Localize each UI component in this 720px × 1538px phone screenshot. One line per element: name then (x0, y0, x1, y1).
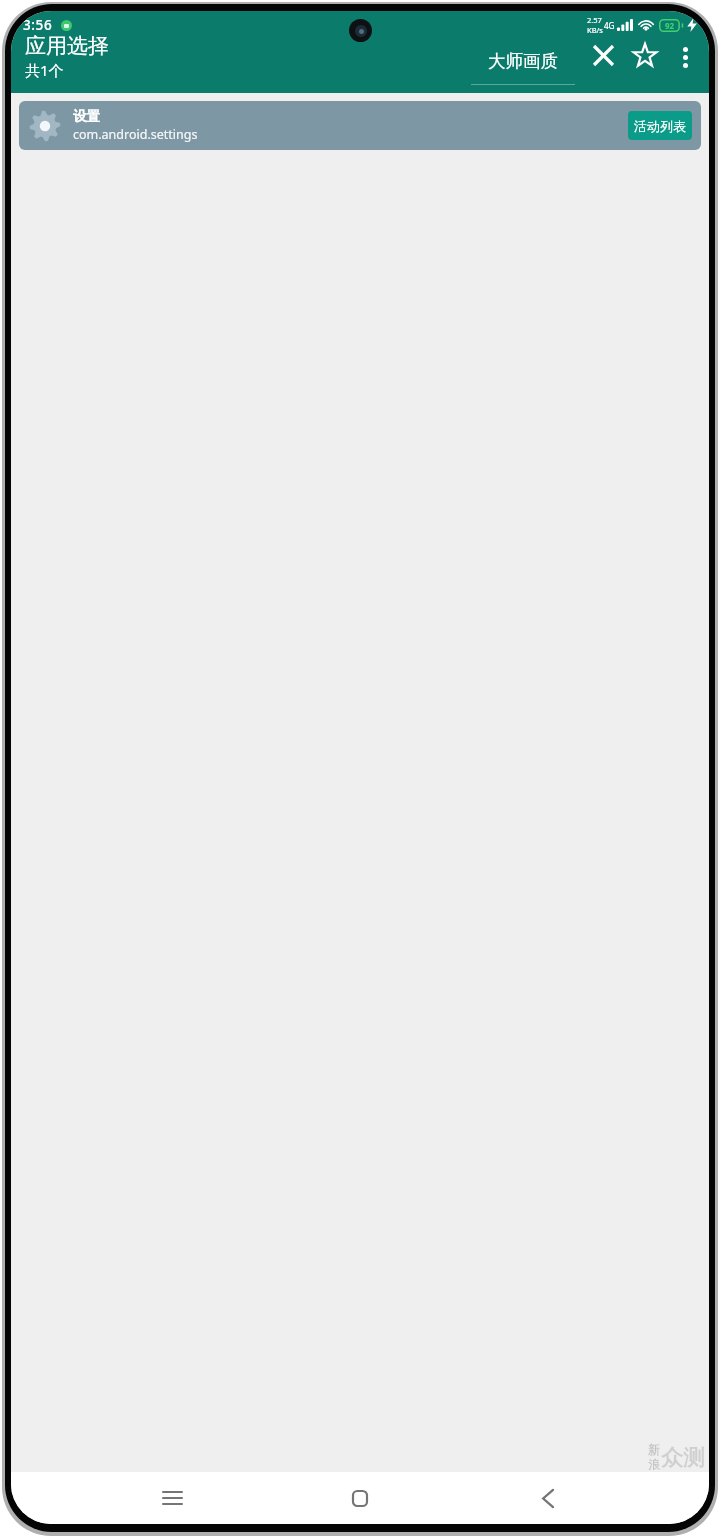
staticText: com.android.settings (73, 126, 198, 143)
button[interactable]: 更多选项 (666, 38, 704, 76)
staticText: 92 (665, 20, 675, 31)
staticText: 新 (648, 1442, 660, 1457)
button[interactable]: 收藏 (624, 34, 666, 76)
button[interactable]: 主屏幕 (333, 1472, 387, 1524)
staticText: 大师画质 (488, 50, 558, 72)
button[interactable]: 最近任务 (145, 1472, 199, 1524)
staticText: 活动列表 (634, 118, 686, 134)
staticText: 应用选择 (25, 33, 109, 59)
button[interactable]: 活动列表 (628, 111, 692, 140)
button[interactable]: 大师画质 (467, 50, 579, 85)
button[interactable]: 应用选择 (25, 33, 109, 80)
staticText: 设置 (73, 108, 100, 125)
button[interactable]: 关闭 (582, 34, 624, 76)
button[interactable]: 返回 (521, 1472, 575, 1524)
staticText: 2.57 (587, 15, 602, 25)
staticText: 4G (604, 20, 615, 31)
button[interactable]: 设置 (19, 101, 701, 150)
staticText: 共1个 (25, 60, 64, 80)
staticText: 3:56 (23, 16, 53, 34)
staticText: KB/s (587, 25, 603, 35)
staticText: 众测 (661, 1444, 705, 1472)
staticText: 浪 (648, 1457, 660, 1472)
